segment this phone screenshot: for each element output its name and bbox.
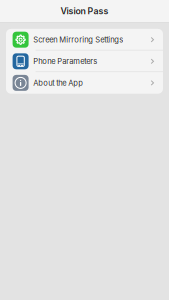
button[interactable]: Phone Parameters — [6, 50, 163, 72]
staticText: Vision Pass — [60, 6, 108, 16]
staticText: Screen Mirroring Settings — [33, 35, 123, 44]
staticText: About the App — [33, 78, 83, 87]
button[interactable]: Screen Mirroring Settings — [6, 29, 163, 50]
staticText: Phone Parameters — [33, 57, 97, 66]
button[interactable]: About the App — [6, 72, 163, 94]
